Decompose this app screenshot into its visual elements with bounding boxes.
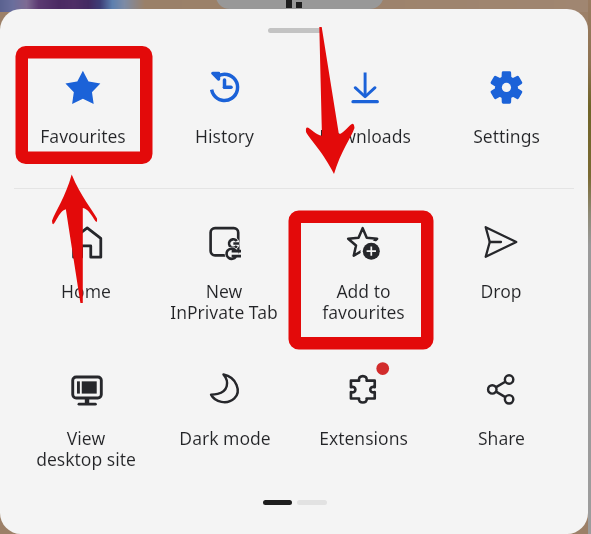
- button[interactable]: Home: [18, 217, 154, 303]
- button[interactable]: Favourites: [15, 62, 151, 148]
- staticText: New InPrivate Tab: [170, 279, 278, 324]
- staticText: Drop: [480, 279, 522, 303]
- button[interactable]: New InPrivate Tab: [156, 217, 292, 324]
- staticText: Settings: [473, 124, 540, 148]
- staticText: Favourites: [40, 124, 126, 148]
- button[interactable]: Extensions: [295, 364, 431, 450]
- staticText: History: [195, 124, 254, 148]
- staticText: Home: [61, 279, 111, 303]
- button[interactable]: View desktop site: [18, 364, 154, 471]
- staticText: Extensions: [319, 426, 408, 450]
- staticText: View desktop site: [36, 426, 136, 471]
- button[interactable]: Share: [433, 364, 569, 450]
- staticText: Share: [478, 426, 525, 450]
- staticText: Add to favourites: [322, 279, 405, 324]
- button[interactable]: Drop: [433, 217, 569, 303]
- staticText: Downloads: [319, 124, 411, 148]
- button[interactable]: Add to favourites: [295, 217, 431, 324]
- button[interactable]: History: [156, 62, 292, 148]
- button[interactable]: Dark mode: [157, 364, 293, 450]
- button[interactable]: Settings: [438, 62, 574, 148]
- button[interactable]: Downloads: [297, 62, 433, 148]
- staticText: Dark mode: [179, 426, 271, 450]
